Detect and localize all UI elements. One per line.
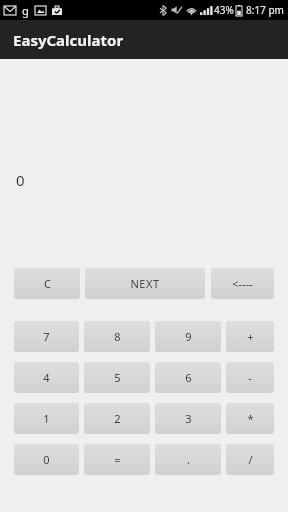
button[interactable]: NEXT <box>85 268 205 299</box>
staticText: g <box>22 3 29 18</box>
button[interactable]: 9 <box>155 321 221 352</box>
button[interactable]: <---- <box>211 268 274 299</box>
staticText: EasyCalculator <box>13 30 124 50</box>
button[interactable]: = <box>84 444 150 475</box>
staticText: * <box>247 411 254 426</box>
button[interactable]: 6 <box>155 362 221 393</box>
staticText: <---- <box>232 276 253 291</box>
staticText: . <box>187 452 190 467</box>
staticText: 7 <box>43 329 50 344</box>
button[interactable]: 1 <box>14 403 79 434</box>
button[interactable]: 8 <box>84 321 150 352</box>
staticText: 2 <box>114 411 121 426</box>
button[interactable]: + <box>226 321 274 352</box>
staticText: = <box>114 452 121 467</box>
staticText: 8:17 pm <box>246 3 284 17</box>
button[interactable]: 3 <box>155 403 221 434</box>
button[interactable]: 7 <box>14 321 79 352</box>
button[interactable]: / <box>226 444 274 475</box>
staticText: 1 <box>43 411 50 426</box>
button[interactable]: 2 <box>84 403 150 434</box>
button[interactable]: 0 <box>14 444 79 475</box>
staticText: C <box>44 276 51 291</box>
button[interactable]: * <box>226 403 274 434</box>
staticText: 0 <box>43 452 50 467</box>
staticText: / <box>248 452 253 467</box>
staticText: 9 <box>185 329 192 344</box>
staticText: - <box>248 370 252 385</box>
button[interactable]: - <box>226 362 274 393</box>
staticText: 6 <box>185 370 192 385</box>
button[interactable]: . <box>155 444 221 475</box>
button[interactable]: 4 <box>14 362 79 393</box>
staticText: 4 <box>43 370 50 385</box>
staticText: + <box>247 329 254 344</box>
staticText: 0 <box>16 170 25 190</box>
staticText: 3 <box>185 411 192 426</box>
staticText: 5 <box>114 370 121 385</box>
button[interactable]: 5 <box>84 362 150 393</box>
staticText: 43% <box>214 3 234 17</box>
staticText: 8 <box>114 329 121 344</box>
button[interactable]: C <box>14 268 80 299</box>
staticText: NEXT <box>130 276 160 291</box>
